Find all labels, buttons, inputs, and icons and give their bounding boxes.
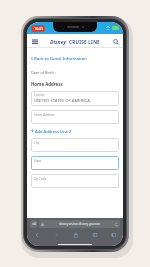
staticText: disneycruise.disney.go.com: [45, 222, 114, 226]
staticText: City: [34, 141, 40, 145]
staticText: Zip Code: [34, 177, 47, 181]
staticText: +: [31, 128, 34, 134]
button[interactable]: Bookmarks: [90, 230, 99, 239]
staticText: State: [34, 159, 42, 163]
button[interactable]: Disney: [50, 38, 100, 45]
button[interactable]: Street Address: [31, 110, 119, 124]
button[interactable]: Menu: [30, 37, 39, 46]
button[interactable]: Share: [71, 230, 80, 239]
button[interactable]: State: [31, 156, 119, 170]
staticText: Date of Birth :: [31, 70, 56, 75]
staticText: aA: [32, 222, 36, 226]
button[interactable]: Text size: [30, 220, 37, 228]
staticText: 16:31: [34, 26, 43, 31]
staticText: Back to Guest Information: [34, 56, 87, 62]
button[interactable]: +: [31, 128, 72, 134]
button[interactable]: Country: [31, 91, 119, 106]
button[interactable]: Back: [32, 230, 41, 239]
staticText: Country: [34, 93, 45, 97]
button[interactable]: Zip Code: [31, 174, 119, 188]
button[interactable]: Recording: [31, 25, 45, 32]
staticText: Street Address: [34, 113, 55, 117]
button[interactable]: ‹: [31, 55, 87, 62]
staticText: Home Address: [31, 81, 63, 87]
button[interactable]: Address bar: [39, 220, 120, 228]
staticText: UNITED STATES OF AMERICA: [34, 98, 90, 104]
button[interactable]: Search: [111, 37, 120, 46]
staticText: CRUISE LINE: [69, 39, 100, 45]
staticText: Add Address Line 2: [35, 129, 72, 134]
button[interactable]: City: [31, 138, 119, 152]
staticText: ‹: [31, 55, 33, 62]
button[interactable]: Tabs: [109, 230, 118, 239]
staticText: Disney: [50, 38, 67, 45]
